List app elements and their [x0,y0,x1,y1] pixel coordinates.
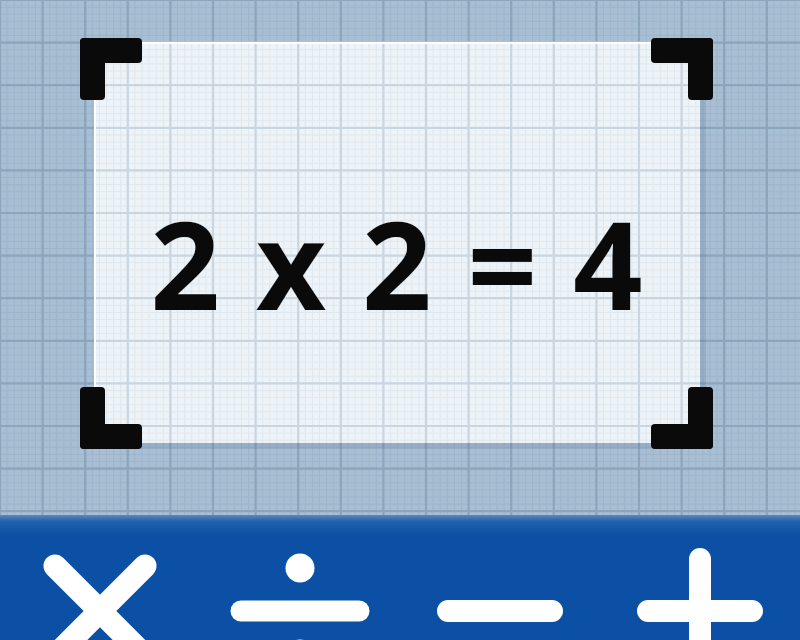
button[interactable]: Subtract [400,515,600,640]
button[interactable]: 2 x 2 = 4 [95,180,700,325]
staticText: 2 x 2 = 4 [150,180,645,325]
button[interactable]: Add [600,515,800,640]
button[interactable]: Divide [200,515,400,640]
button[interactable]: Multiply [0,515,200,640]
